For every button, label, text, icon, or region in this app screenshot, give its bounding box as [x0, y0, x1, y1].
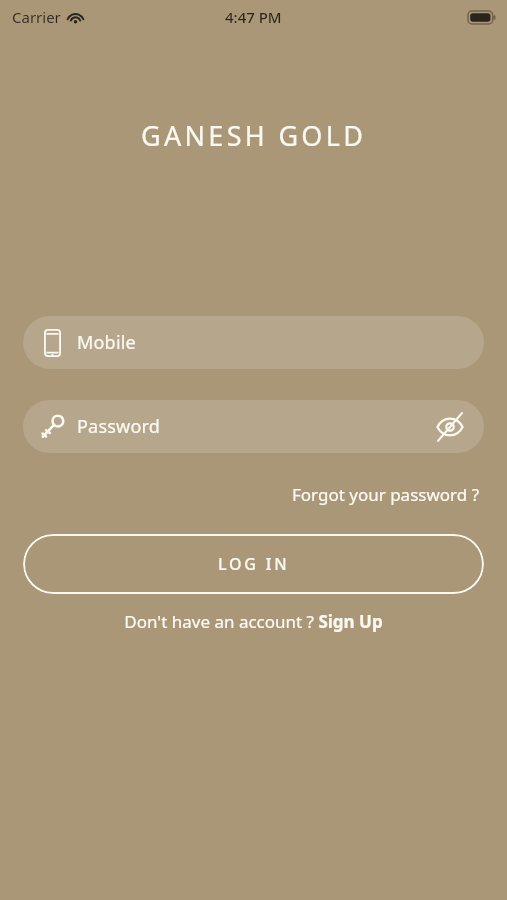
staticText: GANESH GOLD — [141, 117, 367, 154]
button[interactable]: Forgot your password ? — [288, 478, 484, 511]
staticText: LOG IN — [218, 553, 290, 575]
staticText: 4:47 PM — [225, 7, 282, 27]
staticText: Password — [77, 414, 161, 439]
button[interactable]: Password — [23, 400, 484, 453]
button[interactable]: Don't have an account ? Sign Up — [120, 606, 387, 637]
staticText: Mobile — [77, 330, 136, 355]
staticText: Forgot your password ? — [292, 483, 480, 506]
button[interactable]: Mobile — [23, 316, 484, 369]
button[interactable]: Show password — [432, 409, 468, 445]
button[interactable]: LOG IN — [23, 534, 484, 594]
staticText: Carrier — [12, 7, 61, 27]
staticText: Don't have an account ? Sign Up — [124, 610, 383, 633]
